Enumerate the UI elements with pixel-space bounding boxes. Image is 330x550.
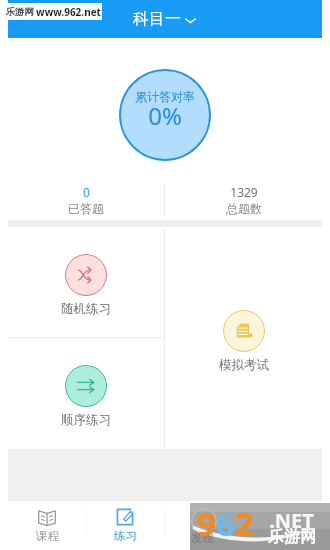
button[interactable]: 顺序练习	[8, 338, 164, 449]
staticText: 9	[197, 501, 216, 546]
staticText: 1329	[230, 184, 258, 200]
staticText: 2	[235, 501, 254, 546]
staticText: 模拟考试	[219, 357, 269, 373]
staticText: 我的	[271, 529, 294, 543]
staticText: .NET	[269, 507, 314, 534]
staticText: 6	[216, 501, 235, 546]
staticText: 总题数	[226, 201, 262, 216]
button[interactable]: 发现	[164, 501, 243, 550]
staticText: 0%	[148, 99, 182, 132]
staticText: 乐游网	[5, 6, 34, 18]
button[interactable]: 随机练习	[8, 227, 164, 337]
staticText: 发现	[192, 529, 215, 543]
button[interactable]: 科目一	[123, 4, 207, 34]
button[interactable]: 0	[8, 180, 164, 220]
staticText: 课程	[36, 529, 59, 543]
staticText: 科目一	[133, 9, 181, 29]
staticText: 0	[83, 184, 90, 200]
staticText: 已答题	[68, 201, 104, 216]
button[interactable]: 模拟考试	[165, 227, 322, 449]
staticText: 乐游网	[268, 527, 316, 547]
staticText: 顺序练习	[61, 412, 111, 428]
button[interactable]: 1329	[165, 180, 322, 220]
staticText: 练习	[114, 529, 137, 543]
staticText: 随机练习	[61, 301, 111, 317]
button[interactable]: 我的	[243, 501, 322, 550]
staticText: 发现	[191, 531, 214, 545]
button[interactable]: 练习	[86, 501, 164, 550]
button[interactable]: 课程	[8, 501, 86, 550]
staticText: 累计答对率	[135, 89, 195, 104]
staticText: www.962.net	[36, 5, 101, 19]
